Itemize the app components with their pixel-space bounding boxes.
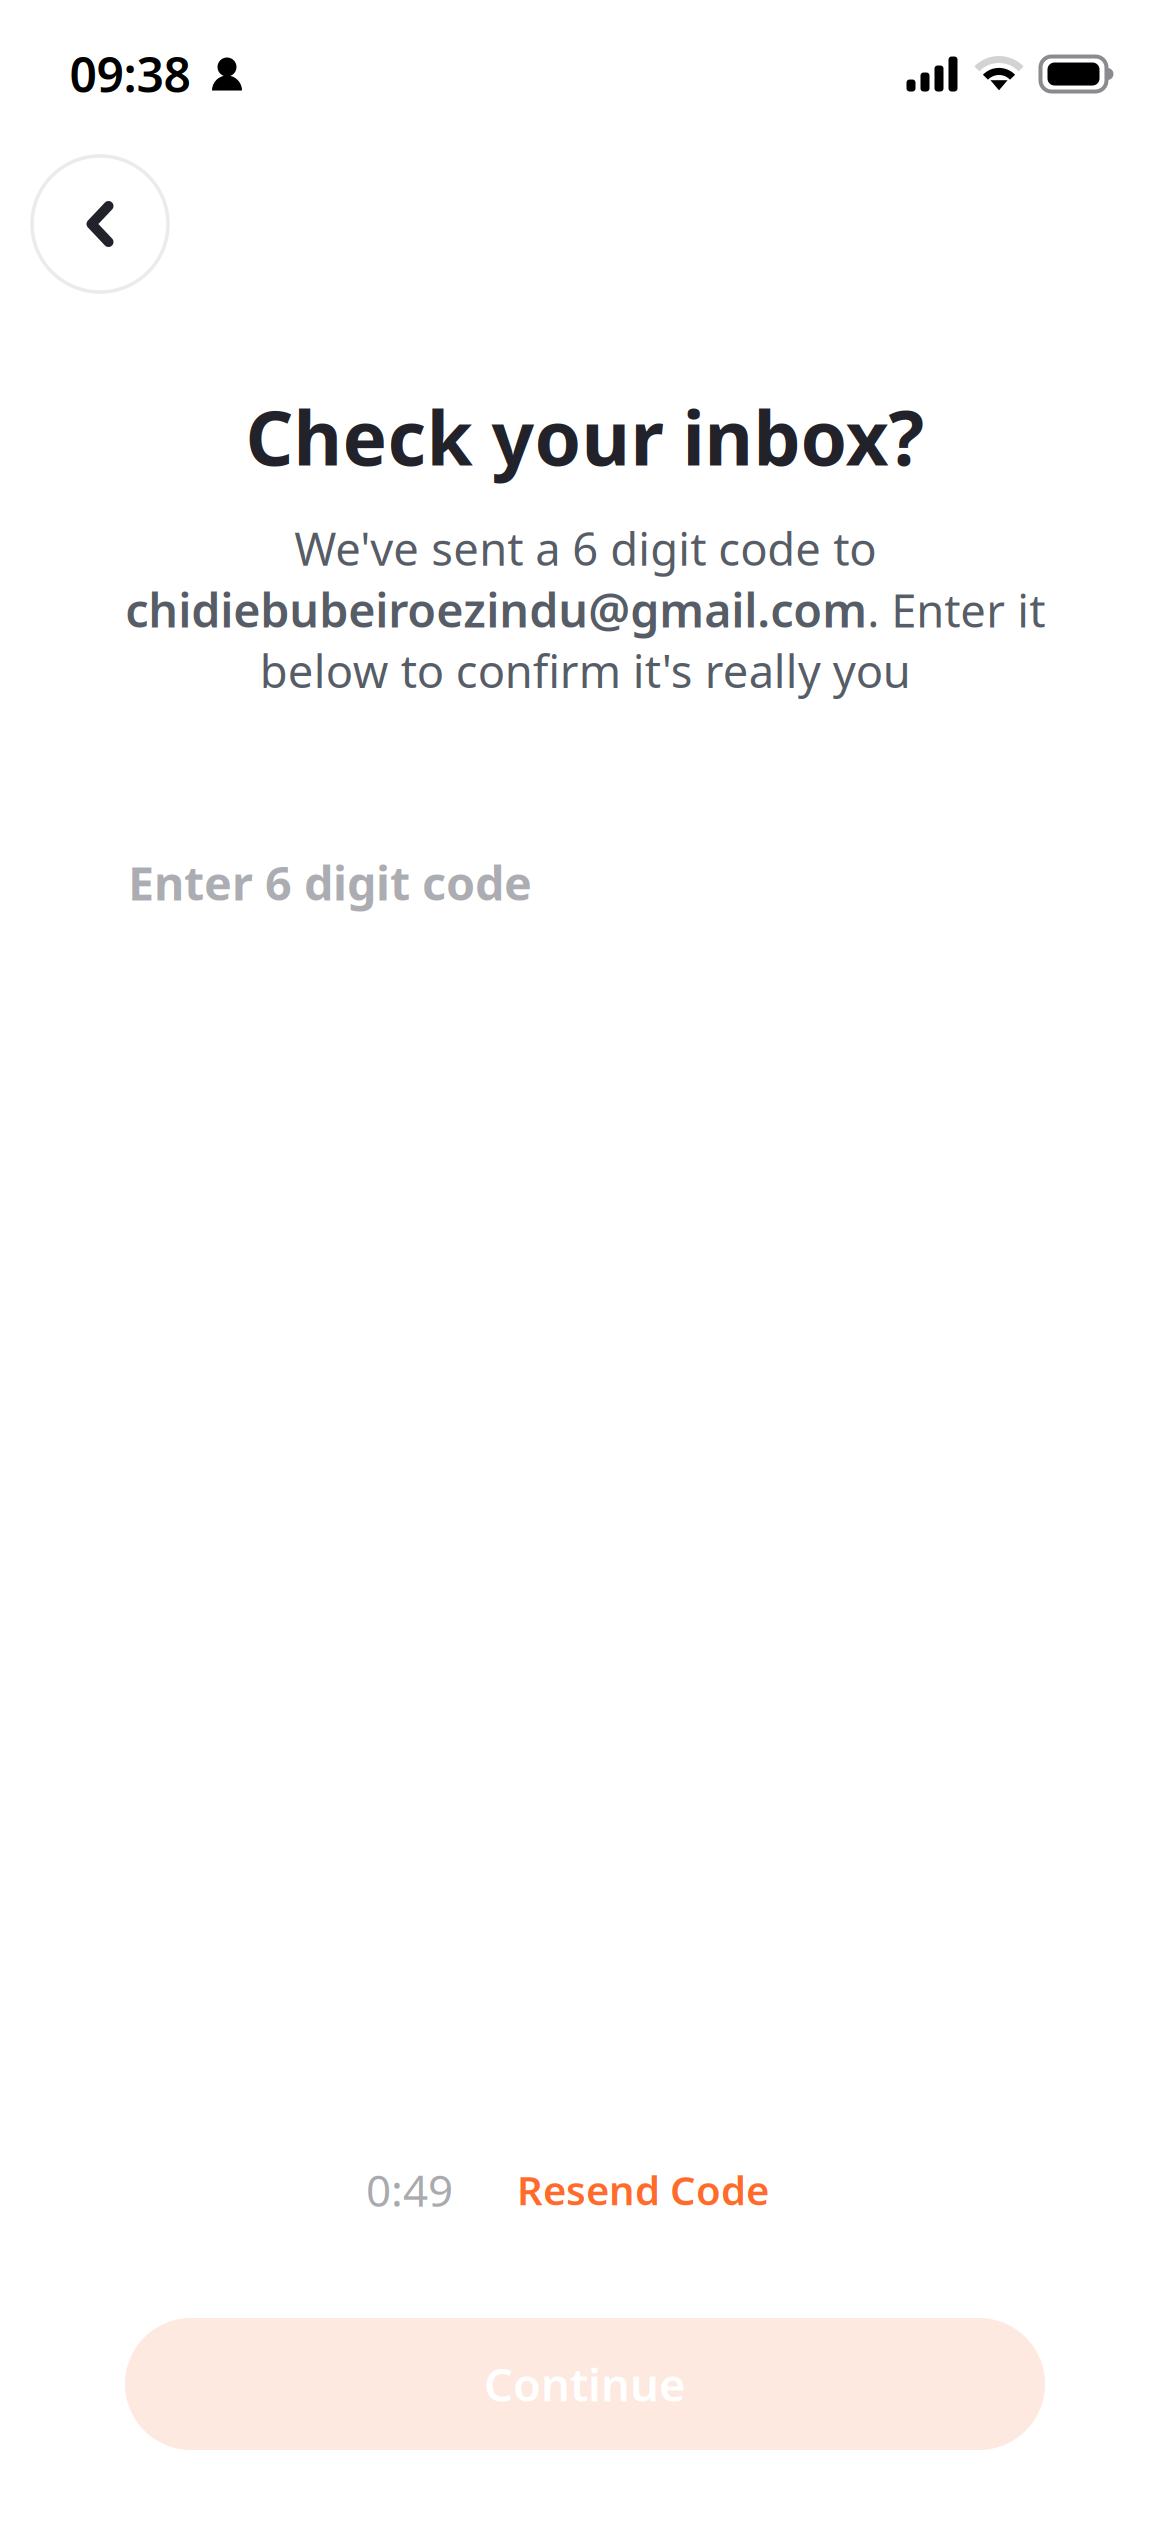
staticText: We've sent a 6 digit code to chidiebubei… (125, 518, 1045, 701)
button[interactable]: Continue (125, 2318, 1045, 2450)
staticText: 0:49 (366, 2161, 453, 2219)
button[interactable]: Back (32, 156, 168, 292)
staticText: Check your inbox? (245, 387, 924, 486)
button[interactable]: Resend Code (517, 2163, 769, 2216)
staticText: Resend Code (517, 2163, 769, 2216)
staticText: Continue (484, 2354, 686, 2414)
staticText: 09:38 (69, 42, 190, 106)
staticText: Enter 6 digit code (128, 851, 532, 913)
